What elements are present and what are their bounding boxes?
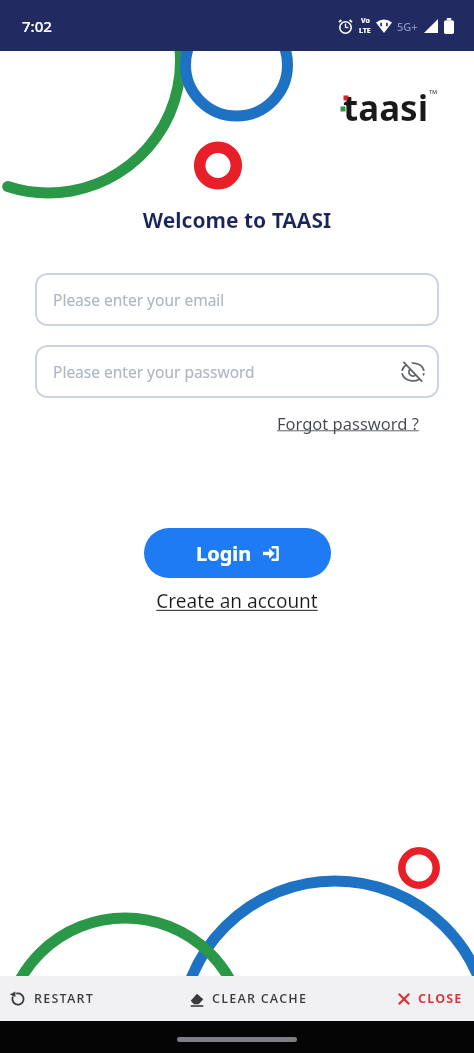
staticText: 7:02 [22, 16, 52, 36]
button[interactable]: RESTART [11, 990, 95, 1007]
staticText: taasi [343, 84, 429, 132]
staticText: Please enter your password [53, 361, 255, 382]
button[interactable]: CLEAR CACHE [190, 990, 308, 1007]
button[interactable]: CLOSE [398, 990, 463, 1007]
staticText: Please enter your email [53, 289, 225, 310]
staticText: Vo [361, 16, 370, 26]
button[interactable]: Please enter your email [35, 273, 439, 326]
button[interactable]: Login [144, 528, 331, 578]
staticText: Welcome to TAASI [0, 206, 474, 235]
staticText: CLOSE [418, 990, 463, 1007]
button[interactable] [401, 360, 425, 384]
staticText: RESTART [34, 990, 95, 1007]
staticText: CLEAR CACHE [212, 990, 308, 1007]
button[interactable]: Please enter your password [35, 345, 439, 398]
button[interactable]: Create an account [156, 588, 318, 614]
staticText: LTE [359, 26, 371, 36]
staticText: Login [196, 540, 252, 567]
button[interactable]: Forgot password ? [277, 412, 419, 434]
staticText: ™ [429, 86, 438, 101]
staticText: 5G+ [397, 19, 418, 34]
